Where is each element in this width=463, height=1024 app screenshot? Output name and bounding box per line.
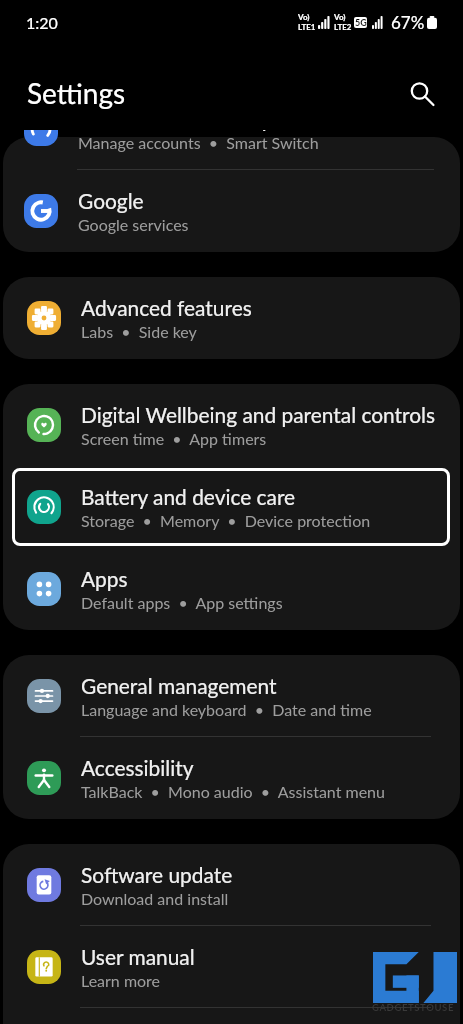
staticText: LTE2 [334, 22, 352, 32]
staticText: Accessibility [81, 755, 194, 780]
staticText: Google services [78, 215, 189, 234]
staticText: General management [81, 673, 277, 698]
staticText: Vo) [298, 12, 310, 22]
staticText: TalkBack • Mono audio • Assistant menu [81, 782, 385, 801]
button[interactable]: Software update [3, 844, 460, 926]
staticText: Vo) [334, 12, 346, 22]
staticText: Vo) [298, 12, 310, 22]
staticText: Default apps • App settings [81, 593, 283, 612]
staticText: User manual [81, 944, 195, 969]
staticText: 67% [391, 12, 425, 32]
staticText: 1:20 [26, 13, 58, 32]
button[interactable]: Search [399, 71, 443, 115]
button[interactable]: Digital Wellbeing and parental controls [3, 384, 460, 466]
staticText: Manage accounts • Smart Switch [78, 133, 319, 152]
button[interactable]: General management [3, 655, 460, 737]
staticText: Learn more [81, 971, 161, 990]
button[interactable]: Battery and device care [3, 466, 460, 548]
staticText: Battery and device care [81, 484, 296, 509]
staticText: LTE2 [334, 22, 352, 32]
staticText: GADGETSTOUSE [372, 1002, 454, 1013]
staticText: 5G [355, 17, 367, 28]
staticText: Language and keyboard • Date and time [81, 700, 372, 719]
button[interactable]: User manual [3, 926, 460, 1008]
staticText: Digital Wellbeing and parental controls [81, 402, 436, 427]
staticText: Apps [81, 566, 128, 591]
staticText: Settings [27, 76, 126, 110]
staticText: Screen time • App timers [81, 429, 267, 448]
staticText: Advanced features [81, 295, 252, 320]
staticText: 1:20 [26, 13, 58, 32]
button[interactable]: Accounts and backup [0, 130, 463, 170]
staticText: 5G [355, 17, 367, 28]
staticText: Download and install [81, 889, 229, 908]
staticText: Storage • Memory • Device protection [81, 511, 371, 530]
staticText: LTE1 [298, 22, 316, 32]
button[interactable]: Advanced features [3, 277, 460, 359]
staticText: Accounts and backup [78, 130, 274, 131]
button[interactable]: Search [399, 71, 443, 115]
staticText: Google [78, 188, 144, 213]
button[interactable]: Google [0, 170, 463, 252]
staticText: Software update [81, 862, 233, 887]
staticText: Settings [27, 76, 126, 110]
staticText: Vo) [334, 12, 346, 22]
staticText: 67% [391, 12, 425, 32]
staticText: Labs • Side key [81, 322, 197, 341]
staticText: LTE1 [298, 22, 316, 32]
button[interactable]: Accessibility [3, 737, 460, 819]
button[interactable]: Apps [3, 548, 460, 630]
